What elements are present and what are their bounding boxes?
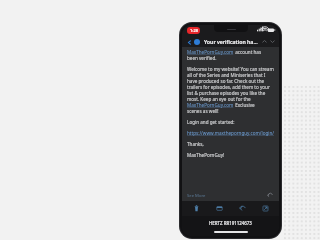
button[interactable]: https://www.maxthepornguy.com/login/ [187,130,274,136]
staticText: scenes as well! [187,108,219,114]
button[interactable]: Back [185,38,193,46]
staticText: Welcome to my website! You can stream al… [187,66,274,102]
button[interactable]: Reply [266,191,274,199]
staticText: MaxThePornGuy! [187,152,225,158]
button[interactable]: Delete [187,201,205,216]
button[interactable]: Next message [268,37,276,46]
staticText: been verified. [187,55,217,61]
button[interactable]: MaxThePornGuy.com [187,49,234,55]
button[interactable]: See More [187,193,206,199]
button[interactable]: Reply [233,201,251,216]
staticText: HERTZ RR191124673 [209,220,252,226]
button[interactable]: MaxThePornGuy.com [187,102,234,108]
button[interactable]: Previous message [260,37,268,46]
staticText: Exclusive [234,102,255,108]
button[interactable]: Sender avatar [194,39,200,45]
staticText: Thanks, [187,141,204,147]
button[interactable]: Archive [210,201,228,216]
button[interactable]: Share [256,201,274,216]
staticText: 1:28 [190,28,198,33]
staticText: Your verification ha... [204,38,260,45]
staticText: account has [234,49,262,55]
staticText: Login and get started: [187,119,235,125]
